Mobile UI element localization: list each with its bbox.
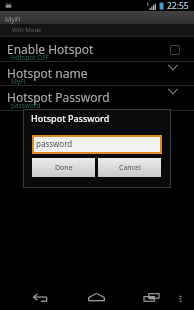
staticText: 22:55	[167, 0, 189, 11]
staticText: Enable Hotspot	[7, 41, 94, 57]
button[interactable]: More options	[172, 280, 190, 310]
button[interactable]: Hotspot Password	[0, 85, 194, 110]
button[interactable]: Home	[79, 280, 114, 310]
button[interactable]: Enable Hotspot	[0, 37, 194, 62]
button[interactable]: Hotspot name	[0, 61, 194, 86]
staticText: Done	[55, 163, 73, 173]
button[interactable]: Cancel	[98, 158, 161, 177]
button[interactable]: Done	[32, 158, 95, 177]
staticText: Hotspot Password	[31, 112, 110, 124]
staticText: Hotspot name	[7, 65, 88, 81]
staticText: Cancel	[119, 163, 141, 173]
staticText: MyFi	[11, 77, 26, 86]
staticText: Hotspot OFF	[11, 53, 49, 62]
staticText: Hotspot Password	[7, 89, 110, 105]
button[interactable]: Recent apps	[134, 280, 169, 310]
button[interactable]: password	[32, 135, 162, 154]
staticText: MyFi	[5, 15, 21, 25]
staticText: password	[11, 101, 41, 110]
staticText: WiFi Mode	[12, 26, 42, 34]
button[interactable]: Back	[24, 280, 59, 310]
staticText: password	[36, 138, 73, 149]
